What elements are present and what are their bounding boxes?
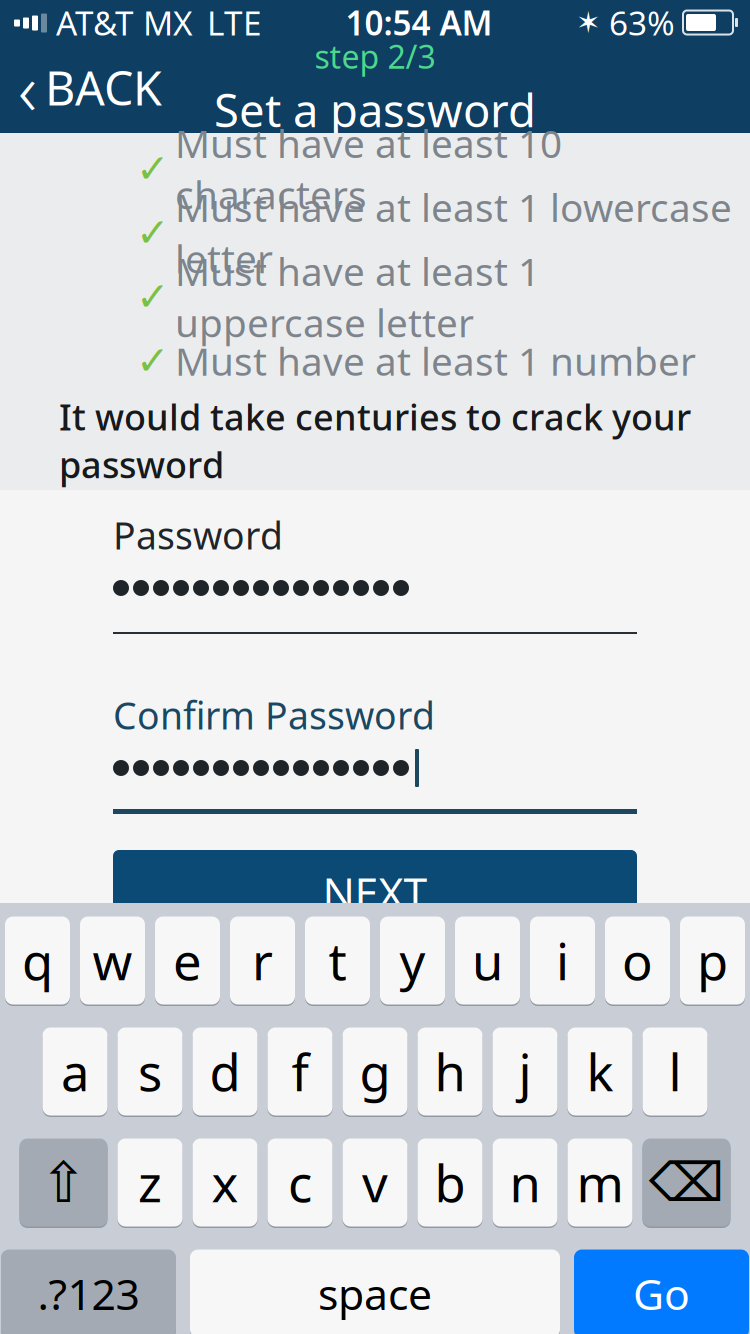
button[interactable]: l	[642, 1026, 707, 1117]
button[interactable]: NEXT	[113, 850, 637, 934]
staticText: step 2/3	[314, 35, 435, 78]
staticText: m	[576, 1149, 623, 1216]
staticText: l	[668, 1038, 681, 1105]
button[interactable]: .?123	[1, 1248, 176, 1334]
staticText: 63%	[609, 0, 675, 45]
staticText: ⇧	[40, 1151, 87, 1214]
staticText: k	[586, 1038, 613, 1105]
button[interactable]: h	[417, 1026, 482, 1117]
staticText: ‹	[18, 40, 37, 135]
button[interactable]: w	[80, 915, 145, 1006]
staticText: ✶	[576, 6, 601, 39]
button[interactable]: v	[342, 1137, 407, 1228]
staticText: a	[61, 1038, 89, 1105]
button[interactable]: Delete	[642, 1137, 730, 1228]
button[interactable]: j	[492, 1026, 557, 1117]
staticText: p	[697, 927, 728, 994]
staticText: d	[209, 1038, 240, 1105]
button[interactable]: g	[342, 1026, 407, 1117]
staticText: Go	[633, 1265, 690, 1322]
button[interactable]: a	[42, 1026, 107, 1117]
button[interactable]: r	[230, 915, 295, 1006]
button[interactable]: space	[190, 1248, 560, 1334]
staticText: z	[138, 1149, 162, 1216]
staticText: r	[252, 927, 273, 994]
staticText: space	[318, 1265, 432, 1322]
staticText: i	[556, 927, 569, 994]
staticText: BACK	[45, 56, 162, 118]
button[interactable]: p	[680, 915, 745, 1006]
staticText: LTE	[207, 0, 262, 45]
button[interactable]: x	[192, 1137, 257, 1228]
staticText: j	[518, 1038, 531, 1105]
staticText: ⌫	[649, 1152, 724, 1213]
staticText: Must have at least 1 number	[175, 335, 696, 386]
button[interactable]: c	[267, 1137, 332, 1228]
button[interactable]: q	[5, 915, 70, 1006]
staticText: e	[173, 927, 202, 994]
staticText: .?123	[37, 1265, 139, 1322]
staticText: 10:54 AM	[345, 0, 492, 45]
staticText: b	[434, 1149, 465, 1216]
button[interactable]: i	[530, 915, 595, 1006]
staticText: q	[22, 927, 53, 994]
staticText: y	[399, 927, 425, 994]
staticText: v	[362, 1149, 388, 1216]
button[interactable]: u	[455, 915, 520, 1006]
button[interactable]: t	[305, 915, 370, 1006]
staticText: It would take centuries to crack your pa…	[59, 393, 691, 488]
staticText: ✓	[136, 274, 170, 319]
staticText: ✓	[136, 338, 170, 383]
staticText: Must have at least 10 characters	[175, 117, 562, 220]
button[interactable]: o	[605, 915, 670, 1006]
button[interactable]: Shift	[19, 1137, 107, 1228]
button[interactable]: m	[567, 1137, 632, 1228]
staticText: g	[359, 1038, 390, 1105]
staticText: Set a password	[214, 80, 536, 140]
staticText: u	[472, 927, 503, 994]
staticText: o	[622, 927, 653, 994]
staticText: c	[288, 1149, 312, 1216]
staticText: f	[291, 1038, 308, 1105]
staticText: ✓	[136, 210, 170, 255]
button[interactable]: Go	[574, 1248, 749, 1334]
button[interactable]: f	[267, 1026, 332, 1117]
staticText: Must have at least 1 lowercase letter	[175, 181, 732, 284]
button[interactable]: Confirm Password	[113, 696, 637, 814]
staticText: Confirm Password	[113, 690, 435, 740]
staticText: AT&T MX	[56, 0, 193, 45]
button[interactable]: ‹	[0, 51, 176, 123]
staticText: s	[138, 1038, 162, 1105]
staticText: x	[211, 1149, 238, 1216]
button[interactable]: b	[417, 1137, 482, 1228]
staticText: Password	[113, 510, 283, 560]
button[interactable]: e	[155, 915, 220, 1006]
button[interactable]: y	[380, 915, 445, 1006]
staticText: n	[509, 1149, 540, 1216]
button[interactable]: z	[117, 1137, 182, 1228]
staticText: t	[328, 927, 346, 994]
button[interactable]: Password	[113, 516, 637, 634]
staticText: NEXT	[322, 864, 427, 920]
button[interactable]: k	[567, 1026, 632, 1117]
staticText: Must have at least 1 uppercase letter	[175, 245, 540, 348]
button[interactable]: n	[492, 1137, 557, 1228]
staticText: ✓	[136, 146, 170, 191]
staticText: w	[92, 927, 132, 994]
button[interactable]: d	[192, 1026, 257, 1117]
staticText: h	[434, 1038, 465, 1105]
button[interactable]: s	[117, 1026, 182, 1117]
